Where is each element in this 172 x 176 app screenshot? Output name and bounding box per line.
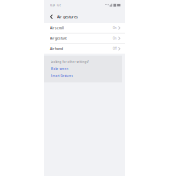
staticText: Air hand: [50, 47, 63, 51]
staticText: 10:24 Tue: [49, 3, 60, 7]
staticText: Smart Gestures: [50, 74, 72, 78]
button[interactable]: Air gesture: [44, 33, 125, 43]
staticText: Air gesture: [50, 36, 67, 41]
button[interactable]: Smart Gestures: [50, 74, 72, 78]
staticText: Air scroll: [50, 26, 64, 30]
button[interactable]: Make screen: [50, 67, 68, 71]
button[interactable]: Air hand: [44, 44, 125, 54]
button[interactable]: Back: [47, 11, 55, 22]
staticText: On: [113, 26, 117, 30]
staticText: On: [113, 36, 117, 40]
button[interactable]: Air scroll: [44, 23, 125, 33]
staticText: Off: [113, 47, 117, 51]
staticText: Looking for other settings?: [50, 60, 88, 64]
staticText: Make screen: [50, 67, 68, 71]
staticText: Air gestures: [57, 14, 78, 19]
